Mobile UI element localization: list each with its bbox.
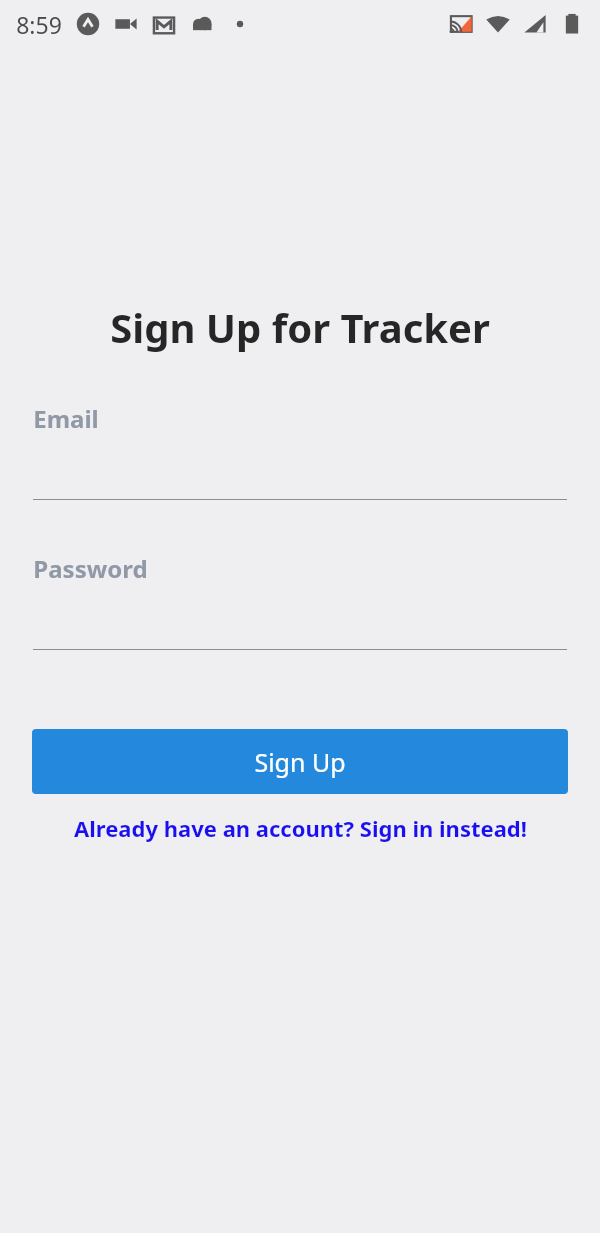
button[interactable]: Sign Up (32, 729, 568, 794)
staticText: 8:59 (16, 9, 62, 40)
button[interactable]: Already have an account? Sign in instead… (0, 813, 600, 843)
staticText: Already have an account? Sign in instead… (74, 813, 527, 843)
staticText: Sign Up (254, 745, 346, 779)
staticText: Sign Up for Tracker (110, 300, 490, 354)
staticText: Email (33, 402, 99, 435)
staticText: Password (33, 552, 148, 585)
